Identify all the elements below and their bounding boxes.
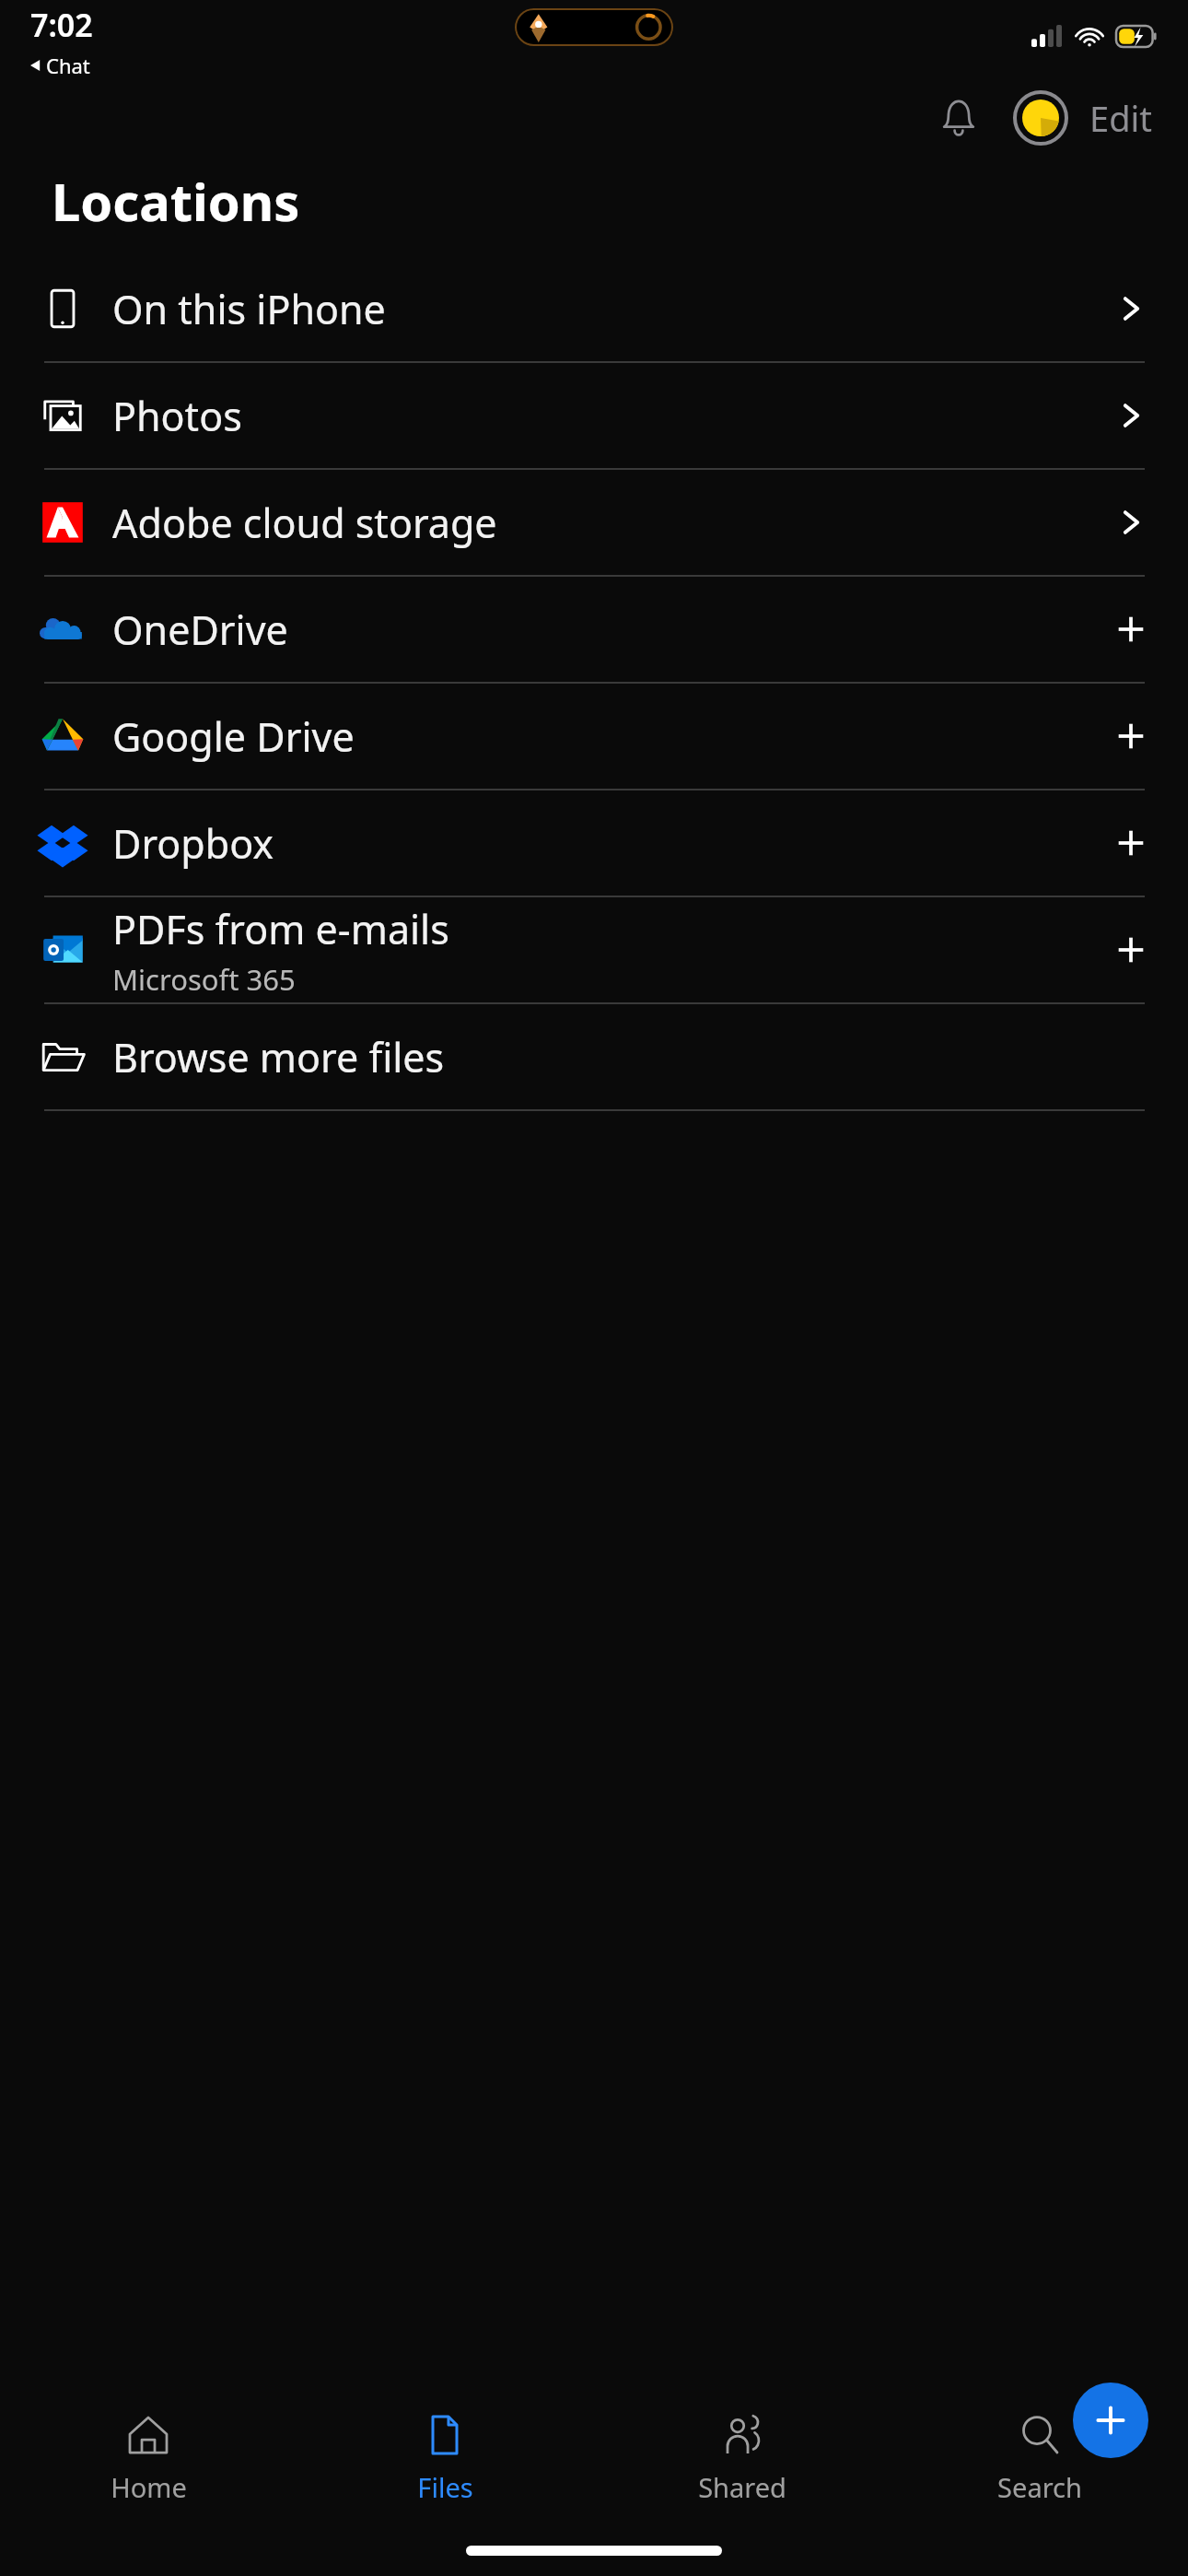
staticText: Adobe cloud storage (112, 496, 497, 550)
button[interactable]: Create new (1073, 2383, 1148, 2458)
button[interactable]: Dropbox (0, 790, 1188, 896)
staticText: Edit (1089, 94, 1153, 142)
staticText: Dropbox (112, 816, 274, 871)
button[interactable]: Shared (593, 2395, 891, 2534)
button[interactable]: Adobe cloud storage (0, 470, 1188, 575)
staticText: 7:02 (30, 4, 93, 46)
button[interactable]: On this iPhone (0, 256, 1188, 361)
staticText: Shared (698, 2469, 786, 2505)
staticText: Search (997, 2469, 1082, 2505)
button[interactable]: Home (0, 2395, 297, 2534)
staticText: Files (417, 2469, 473, 2505)
button[interactable]: Account (1012, 89, 1069, 146)
staticText: Locations (52, 166, 300, 236)
button[interactable]: Files (297, 2395, 593, 2534)
staticText: Home (111, 2469, 187, 2505)
button[interactable]: Google Drive (0, 684, 1188, 789)
button[interactable]: PDFs from e-mails (0, 897, 1188, 1002)
staticText: Microsoft 365 (112, 960, 296, 999)
button[interactable]: Photos (0, 363, 1188, 468)
staticText: Photos (112, 389, 242, 443)
staticText: OneDrive (112, 603, 288, 657)
staticText: Google Drive (112, 709, 355, 764)
button[interactable]: Notifications (926, 85, 992, 151)
button[interactable]: Browse more files (0, 1004, 1188, 1109)
staticText: Browse more files (112, 1030, 445, 1084)
button[interactable]: Edit (1086, 83, 1157, 153)
staticText: On this iPhone (112, 282, 386, 336)
button[interactable]: OneDrive (0, 577, 1188, 682)
staticText: PDFs from e-mails (112, 902, 449, 956)
button[interactable]: Search (891, 2395, 1188, 2534)
staticText: Chat (46, 52, 90, 79)
